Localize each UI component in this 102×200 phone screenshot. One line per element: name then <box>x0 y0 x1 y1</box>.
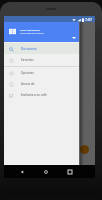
staticText: Opciones <box>21 71 34 75</box>
staticText: Acerca de <box>21 82 35 86</box>
button[interactable]: Favoritos <box>4 54 79 65</box>
button[interactable]: Invítame a un café <box>4 89 79 100</box>
staticText: Hiper Diccionario <box>20 28 40 31</box>
button[interactable]: Recents <box>65 165 75 178</box>
button[interactable]: Home <box>41 165 51 178</box>
staticText: Diccionario <box>21 47 37 51</box>
button[interactable]: Back <box>17 165 27 178</box>
staticText: Diccionario de la lengua <box>20 32 44 35</box>
staticText: Favoritos <box>21 58 34 62</box>
button[interactable]: Opciones <box>4 67 79 78</box>
button[interactable]: Add <box>80 145 89 154</box>
staticText: 7:07 <box>85 17 93 22</box>
staticText: Invítame a un café <box>21 93 47 97</box>
button[interactable]: Diccionario <box>4 43 79 54</box>
button[interactable]: Acerca de <box>4 78 79 89</box>
